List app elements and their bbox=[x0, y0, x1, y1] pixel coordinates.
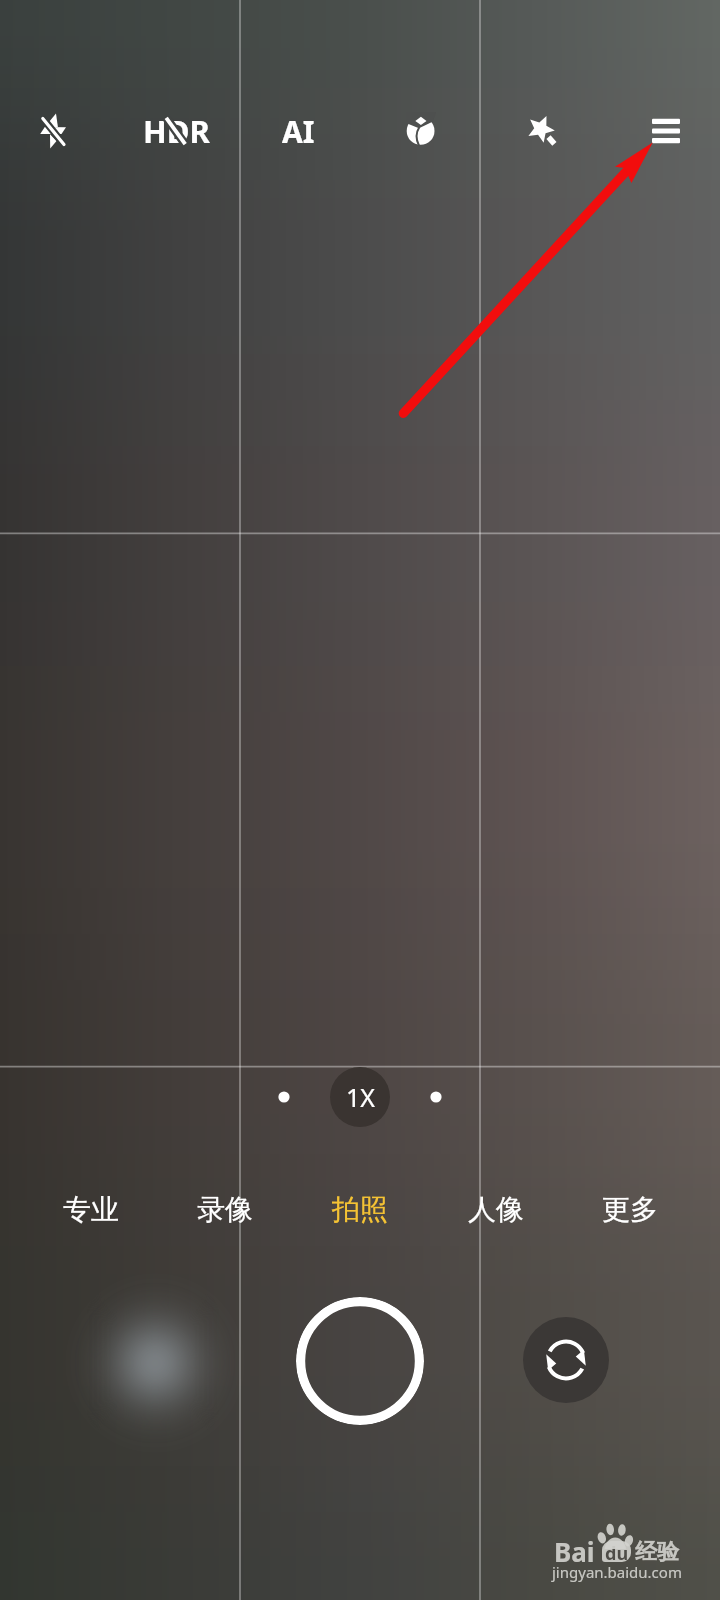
staticText: 录像 bbox=[197, 1192, 253, 1227]
staticText: 更多 bbox=[602, 1192, 658, 1227]
staticText: jingyan.baidu.com bbox=[552, 1562, 682, 1582]
staticText: 经验 bbox=[635, 1538, 679, 1566]
button[interactable]: 录像 bbox=[175, 1179, 275, 1239]
staticText: 人像 bbox=[468, 1192, 524, 1227]
staticText: 拍照 bbox=[332, 1192, 388, 1227]
button[interactable]: Settings menu bbox=[636, 101, 696, 161]
staticText: 专业 bbox=[63, 1192, 119, 1227]
staticText: 1X bbox=[346, 1080, 375, 1114]
button[interactable]: AI bbox=[268, 101, 328, 161]
button[interactable]: Beauty bbox=[511, 101, 571, 161]
button[interactable]: Flash off bbox=[23, 101, 83, 161]
button[interactable]: Switch camera bbox=[523, 1317, 609, 1403]
staticText: HDR bbox=[143, 110, 210, 152]
staticText: Bai bbox=[554, 1534, 595, 1569]
button[interactable]: Shutter bbox=[296, 1297, 424, 1425]
staticText: du bbox=[605, 1541, 629, 1562]
button[interactable]: HDR bbox=[126, 101, 226, 161]
button[interactable]: 专业 bbox=[41, 1179, 141, 1239]
button[interactable]: 1X bbox=[330, 1067, 390, 1127]
button[interactable]: 拍照 bbox=[310, 1179, 410, 1239]
button[interactable]: 更多 bbox=[580, 1179, 680, 1239]
button[interactable]: 人像 bbox=[446, 1179, 546, 1239]
staticText: AI bbox=[282, 111, 315, 152]
button[interactable]: Filters bbox=[391, 101, 451, 161]
